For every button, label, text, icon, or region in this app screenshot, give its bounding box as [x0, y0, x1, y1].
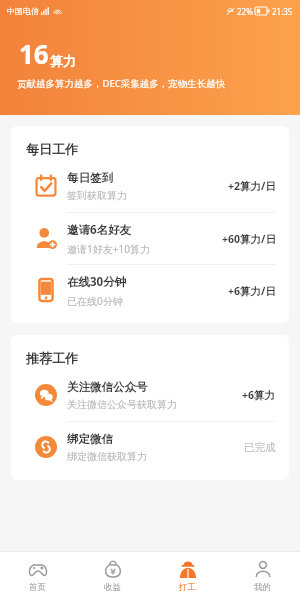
staticText: 已完成 [244, 441, 276, 454]
staticText: 21:35 [272, 6, 293, 17]
staticText: +60算力/日 [222, 232, 276, 246]
staticText: 每日工作 [26, 141, 78, 157]
button[interactable]: 收益 [75, 554, 150, 598]
button[interactable]: 绑定微信 [11, 421, 289, 473]
button[interactable]: 邀请6名好友 [11, 212, 289, 264]
staticText: 推荐工作 [26, 350, 78, 366]
staticText: 每日签到 [67, 171, 113, 185]
staticText: 算力 [50, 53, 76, 69]
staticText: 16 [19, 36, 49, 71]
staticText: 绑定微信 [67, 432, 113, 446]
staticText: 我的 [254, 582, 271, 593]
staticText: 已在线0分钟 [67, 294, 123, 308]
button[interactable]: 打工 [150, 554, 225, 598]
staticText: 邀请1好友+10算力 [67, 242, 150, 256]
staticText: +6算力 [242, 388, 276, 402]
staticText: 打工 [179, 582, 196, 593]
staticText: +2算力/日 [228, 179, 276, 193]
staticText: 贡献越多算力越多，DEC采集越多，宠物生长越快 [17, 77, 226, 90]
button[interactable]: 我的 [225, 554, 300, 598]
staticText: 首页 [29, 582, 46, 593]
button[interactable]: 在线30分钟 [11, 264, 289, 316]
staticText: +6算力/日 [228, 284, 276, 298]
button[interactable]: 首页 [0, 554, 75, 598]
staticText: 在线30分钟 [67, 274, 127, 290]
staticText: 收益 [104, 582, 121, 593]
staticText: 邀请6名好友 [67, 222, 132, 238]
staticText: 签到获取算力 [67, 189, 127, 202]
staticText: 绑定微信获取算力 [67, 450, 147, 463]
staticText: 关注微信公众号 [67, 380, 148, 394]
staticText: 关注微信公众号获取算力 [67, 398, 177, 411]
button[interactable]: 关注微信公众号 [11, 369, 289, 421]
staticText: 中国电信 [7, 6, 39, 16]
staticText: 22% [237, 6, 253, 17]
button[interactable]: 每日签到 [11, 160, 289, 212]
